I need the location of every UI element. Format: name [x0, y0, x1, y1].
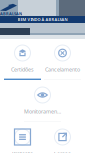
button[interactable]: Cancelamento: [44, 39, 81, 80]
button[interactable]: Protesto: [4, 123, 41, 153]
button[interactable]: Serasa: [44, 123, 81, 153]
staticText: BEM VINDO À ABRALSAN: [17, 17, 67, 22]
button[interactable]: Monitoramento: [24, 81, 61, 122]
staticText: Certidões: [11, 66, 34, 73]
button[interactable]: Certidões: [4, 39, 41, 80]
staticText: Serasa: [54, 150, 71, 153]
staticText: Cancelamento: [45, 66, 80, 73]
staticText: Monitoramento: [24, 108, 61, 115]
staticText: ABRALSAN: [0, 11, 22, 16]
staticText: Protesto: [12, 150, 33, 153]
